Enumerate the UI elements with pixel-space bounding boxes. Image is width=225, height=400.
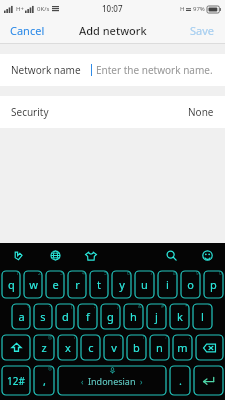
button[interactable]: 12# [1,365,31,396]
button[interactable]: ) [100,303,121,330]
staticText: " [208,303,211,310]
button[interactable]: 8 [157,270,178,299]
staticText: H+ [16,5,24,13]
staticText: . [179,373,182,388]
button[interactable]: Network name [0,54,225,86]
staticText: u [141,277,148,292]
staticText: j [155,309,158,324]
staticText: 0K/s [37,5,50,13]
staticText: Add network [79,23,147,38]
button[interactable]: & [123,303,144,330]
staticText: w [29,277,38,292]
staticText: d [62,309,69,324]
button[interactable]: ( [55,303,75,330]
button[interactable]: Cancel [0,17,55,43]
staticText: # [161,303,165,310]
button[interactable]: Theme [73,243,109,268]
staticText: f [86,309,90,324]
staticText: 9 [196,270,199,277]
button[interactable]: 1 [1,270,21,299]
staticText: Enter the network name. [96,63,213,77]
staticText: ' [97,334,99,341]
button[interactable]: ! [126,334,147,361]
staticText: l [201,309,204,324]
staticText: v [111,340,117,355]
staticText: e [52,277,59,292]
staticText: , [43,373,46,388]
staticText: i [166,277,169,292]
button[interactable]: Backspace [195,334,224,361]
button[interactable]: 3 [45,270,65,299]
button[interactable]: 6 [111,270,132,299]
staticText: Save [190,23,215,38]
staticText: 8 [173,270,176,277]
button[interactable]: 9 [180,270,201,299]
button[interactable]: \ [11,303,31,330]
button[interactable]: Enter [193,365,224,396]
button[interactable]: , [172,334,193,361]
staticText: s [40,309,46,324]
button[interactable]: @ [33,334,55,361]
button[interactable]: @ [33,365,55,396]
button[interactable]: ; [77,303,98,330]
staticText: H [180,5,185,13]
button[interactable]: : [103,334,124,361]
staticText: * [185,303,188,310]
button[interactable]: 7 [134,270,155,299]
button[interactable]: Security [0,96,225,128]
button[interactable]: Emoji [189,243,225,268]
button[interactable]: 4 [67,270,87,299]
button[interactable]: Language [37,243,73,268]
staticText: m [177,340,188,355]
button[interactable]: Save [180,17,225,43]
button[interactable]: 2 [23,270,43,299]
button[interactable]: Shift [1,334,31,361]
staticText: ? [165,334,168,341]
staticText: Security [11,105,49,119]
button[interactable]: / [57,334,78,361]
staticText: › [140,376,143,387]
staticText: 5 [104,270,107,277]
button[interactable]: # [146,303,167,330]
staticText: q [8,277,15,292]
button[interactable]: ‹ [57,365,167,396]
staticText: ! [143,334,145,341]
staticText: n [156,340,163,355]
staticText: , [189,334,191,341]
staticText: g [107,309,114,324]
staticText: 12# [7,374,25,388]
button[interactable]: - [33,303,53,330]
staticText: & [138,303,142,310]
button[interactable]: 0 [203,270,224,299]
staticText: ) [117,303,119,310]
staticText: 1 [16,270,19,277]
staticText: k [177,309,183,324]
staticText: @ [48,334,53,341]
staticText: Cancel [10,23,45,38]
button[interactable]: . [169,365,191,396]
staticText: c [88,340,94,355]
staticText: None [188,105,214,119]
staticText: ( [71,303,73,310]
staticText: 4 [82,270,85,277]
button[interactable]: " [192,303,213,330]
button[interactable]: Voice input [0,243,37,268]
staticText: / [74,334,76,341]
staticText: p [210,277,217,292]
staticText: - [49,303,51,310]
staticText: r [75,277,80,292]
staticText: 7 [150,270,153,277]
staticText: : [120,334,122,341]
staticText: \ [27,303,29,310]
staticText: 97% [193,5,205,13]
staticText: x [65,340,71,355]
button[interactable]: * [169,303,190,330]
staticText: o [187,277,194,292]
staticText: 6 [127,270,130,277]
staticText: t [97,277,101,292]
button[interactable]: 5 [89,270,109,299]
button[interactable]: ' [80,334,101,361]
button[interactable]: Search [153,243,189,268]
staticText: ‹ [81,376,84,387]
button[interactable]: ? [149,334,170,361]
